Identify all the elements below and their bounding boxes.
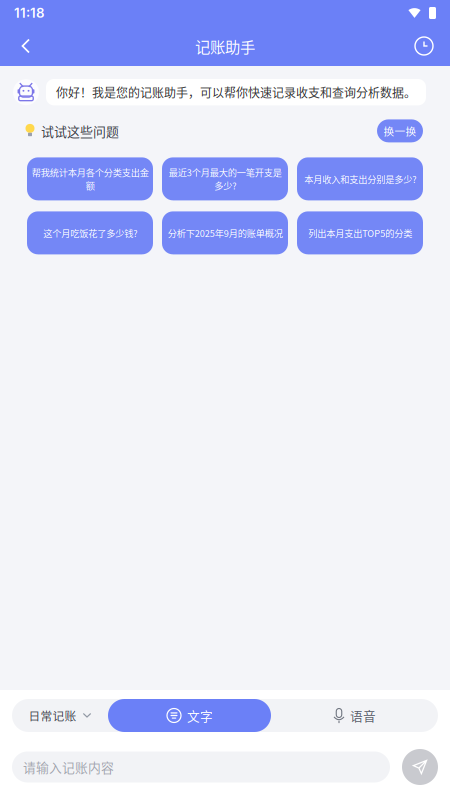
button[interactable]: History — [402, 26, 446, 66]
button[interactable]: 这个月吃饭花了多少钱? — [27, 211, 153, 254]
staticText: 帮我统计本月各个分类支出金额 — [31, 166, 148, 192]
button[interactable]: 最近3个月最大的一笔开支是多少? — [162, 157, 288, 200]
staticText: 记账助手 — [195, 35, 255, 57]
staticText: 列出本月支出TOP5的分类 — [308, 226, 412, 239]
button[interactable]: 列出本月支出TOP5的分类 — [297, 211, 423, 254]
staticText: 分析下2025年9月的账单概况 — [167, 226, 282, 239]
staticText: 试试这些问题 — [41, 121, 119, 140]
button[interactable]: 分析下2025年9月的账单概况 — [162, 211, 288, 254]
staticText: 文字 — [187, 706, 213, 725]
staticText: 这个月吃饭花了多少钱? — [43, 226, 137, 239]
staticText: 你好！我是您的记账助手，可以帮你快速记录收支和查询分析数据。 — [56, 83, 416, 101]
button[interactable]: Send — [390, 747, 450, 787]
button[interactable]: 文字 — [108, 699, 271, 732]
staticText: 最近3个月最大的一笔开支是多少? — [168, 166, 281, 192]
button[interactable]: 本月收入和支出分别是多少? — [297, 157, 423, 200]
staticText: 11:18 — [14, 5, 45, 21]
staticText: 请输入记账内容 — [23, 758, 114, 776]
staticText: 换一换 — [383, 123, 416, 139]
button[interactable]: Back — [4, 26, 48, 66]
staticText: 日常记账 — [28, 707, 76, 724]
button[interactable]: 换一换 — [377, 119, 423, 142]
staticText: 本月收入和支出分别是多少? — [304, 172, 416, 185]
staticText: 语音 — [350, 706, 376, 725]
button[interactable]: 日常记账 — [12, 699, 108, 732]
button[interactable]: 语音 — [271, 699, 438, 732]
button[interactable]: 帮我统计本月各个分类支出金额 — [27, 157, 153, 200]
